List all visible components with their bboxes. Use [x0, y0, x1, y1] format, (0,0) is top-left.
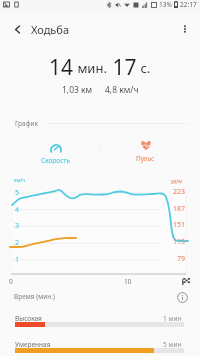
- staticText: 5 мин: [163, 340, 182, 349]
- staticText: с.: [137, 59, 151, 77]
- staticText: Скорость: [41, 156, 70, 164]
- staticText: 1: [15, 255, 20, 265]
- staticText: 223: [173, 187, 186, 197]
- staticText: 1,03 км: [62, 84, 93, 95]
- staticText: 79: [177, 254, 186, 264]
- button[interactable]: Info: [176, 291, 188, 303]
- staticText: 17: [107, 53, 137, 78]
- staticText: Умеренная: [15, 340, 51, 349]
- staticText: 3: [15, 221, 20, 231]
- staticText: 2: [15, 238, 20, 248]
- staticText: 22:17: [180, 0, 197, 9]
- staticText: км/ч: [14, 177, 26, 184]
- button[interactable]: Finish: [180, 276, 191, 287]
- staticText: Высокая: [15, 314, 42, 323]
- staticText: 10: [124, 277, 132, 286]
- button[interactable]: Скорость: [30, 130, 80, 164]
- staticText: Пульс: [136, 154, 155, 163]
- staticText: мин.: [74, 59, 107, 77]
- staticText: 13%: [159, 0, 172, 9]
- staticText: 4: [15, 205, 20, 215]
- button[interactable]: Высокая: [0, 313, 200, 333]
- button[interactable]: Умеренная: [0, 339, 200, 356]
- button[interactable]: Пульс: [120, 130, 170, 164]
- staticText: График: [15, 119, 38, 128]
- button[interactable]: More options: [174, 18, 196, 40]
- staticText: Время (мин.): [14, 292, 55, 301]
- button[interactable]: Back: [6, 18, 28, 40]
- staticText: 151: [173, 220, 186, 230]
- staticText: 0: [9, 277, 13, 286]
- staticText: 187: [173, 204, 186, 214]
- staticText: 5: [15, 188, 20, 198]
- staticText: 14: [49, 53, 74, 78]
- staticText: 115: [173, 237, 186, 247]
- staticText: 1 мин: [163, 314, 182, 323]
- staticText: 4,8 км/ч: [105, 84, 139, 95]
- staticText: Ходьба: [31, 22, 70, 37]
- staticText: уд/м: [171, 178, 183, 185]
